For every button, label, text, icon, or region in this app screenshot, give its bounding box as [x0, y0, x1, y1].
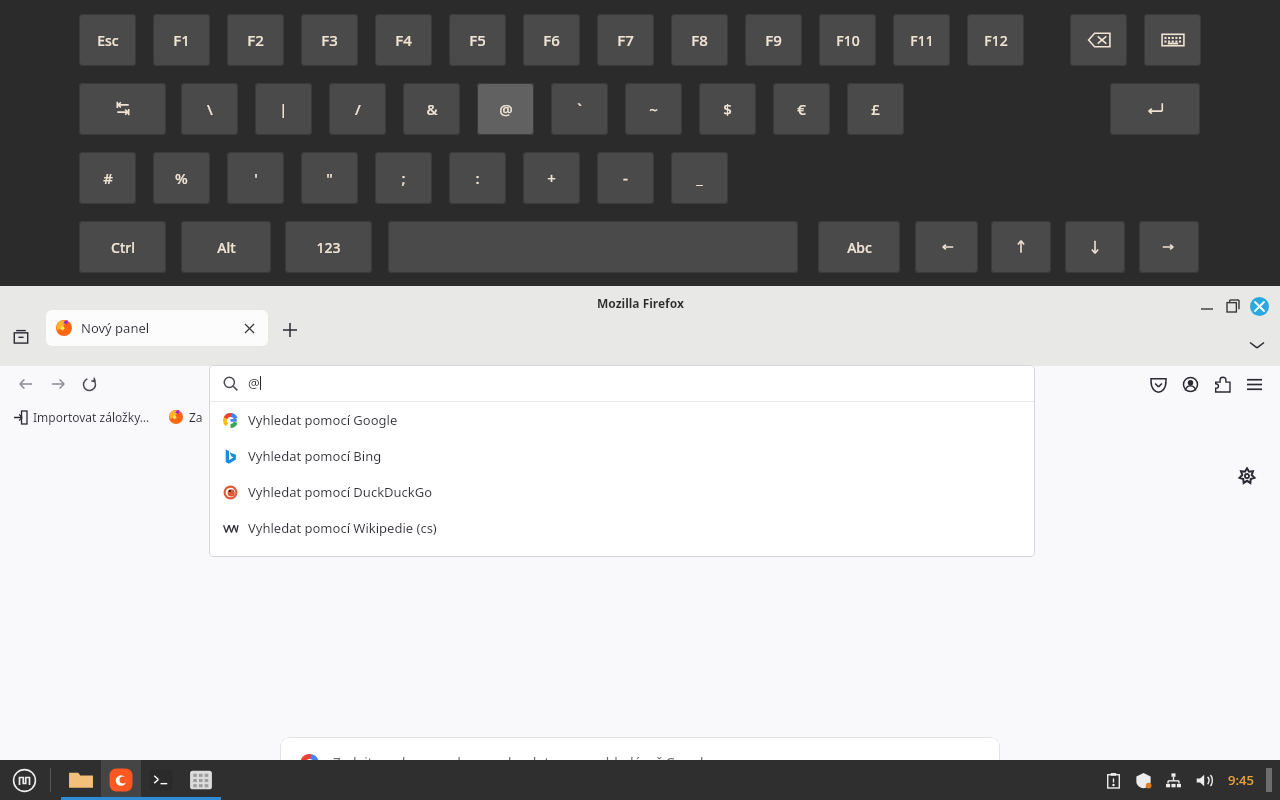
button[interactable]: enter: [1110, 83, 1200, 135]
button[interactable]: Clipboard: [1098, 765, 1128, 795]
button[interactable]: Vyhledat pomocí Wikipedie (cs): [223, 510, 1035, 546]
button[interactable]: _: [671, 152, 728, 204]
staticText: ;: [401, 168, 406, 188]
button[interactable]: F9: [745, 14, 802, 66]
staticText: F1: [173, 30, 190, 50]
button[interactable]: £: [847, 83, 904, 135]
button[interactable]: ": [301, 152, 358, 204]
button[interactable]: Close: [1246, 293, 1272, 319]
button[interactable]: Update manager: [1128, 765, 1158, 795]
button[interactable]: up: [991, 221, 1051, 273]
button[interactable]: Alt: [181, 221, 271, 273]
button[interactable]: Close tab: [240, 319, 258, 337]
button[interactable]: `: [551, 83, 608, 135]
button[interactable]: Vyhledat pomocí DuckDuckGo: [223, 474, 1035, 510]
button[interactable]: F3: [301, 14, 358, 66]
button[interactable]: Forward: [42, 368, 74, 400]
staticText: #: [103, 168, 113, 188]
staticText: Alt: [217, 238, 236, 257]
staticText: F5: [469, 30, 486, 50]
button[interactable]: Vyhledat pomocí Bing: [223, 438, 1035, 474]
button[interactable]: bksp: [1070, 14, 1127, 66]
button[interactable]: Files: [61, 760, 101, 800]
button[interactable]: kbd: [1144, 14, 1201, 66]
button[interactable]: Reload: [74, 369, 104, 399]
button[interactable]: $: [699, 83, 756, 135]
button[interactable]: New tab: [276, 316, 304, 344]
button[interactable]: ': [227, 152, 284, 204]
button[interactable]: Volume: [1188, 765, 1218, 795]
button[interactable]: Maximize: [1220, 293, 1246, 319]
button[interactable]: Abc: [818, 221, 900, 273]
button[interactable]: Expand: [1242, 330, 1272, 360]
button[interactable]: Vyhledat pomocí Google: [223, 402, 1035, 438]
button[interactable]: 9:45: [1222, 771, 1260, 789]
button[interactable]: @: [477, 83, 534, 135]
button[interactable]: Save to Pocket: [1142, 368, 1174, 400]
button[interactable]: &: [403, 83, 460, 135]
staticText: €: [797, 99, 806, 119]
button[interactable]: F12: [967, 14, 1024, 66]
staticText: _: [696, 168, 703, 188]
button[interactable]: F11: [893, 14, 950, 66]
button[interactable]: Importovat záložky…: [8, 406, 156, 428]
button[interactable]: [388, 221, 798, 273]
staticText: Abc: [847, 238, 872, 257]
staticText: |: [279, 99, 288, 119]
button[interactable]: Personalize new tab: [1233, 462, 1261, 490]
button[interactable]: -: [597, 152, 654, 204]
button[interactable]: On-screen keyboard: [181, 760, 221, 800]
button[interactable]: Firefox: [101, 760, 141, 800]
button[interactable]: Ctrl: [79, 221, 166, 273]
staticText: F6: [543, 30, 560, 50]
staticText: +: [547, 168, 556, 188]
button[interactable]: +: [523, 152, 580, 204]
button[interactable]: %: [153, 152, 210, 204]
staticText: %: [175, 168, 188, 188]
button[interactable]: F10: [819, 14, 876, 66]
button[interactable]: €: [773, 83, 830, 135]
button[interactable]: Minimize: [1194, 293, 1220, 319]
button[interactable]: F2: [227, 14, 284, 66]
button[interactable]: F8: [671, 14, 728, 66]
button[interactable]: Network: [1158, 765, 1188, 795]
button[interactable]: F6: [523, 14, 580, 66]
button[interactable]: Open application menu: [1238, 368, 1270, 400]
button[interactable]: Extensions: [1206, 368, 1238, 400]
staticText: \: [207, 99, 213, 119]
button[interactable]: 123: [285, 221, 372, 273]
staticText: F7: [617, 30, 634, 50]
button[interactable]: Zadejte webovou adresu nebo dotaz pro vy…: [300, 737, 1000, 789]
button[interactable]: ;: [375, 152, 432, 204]
button[interactable]: F5: [449, 14, 506, 66]
button[interactable]: F7: [597, 14, 654, 66]
button[interactable]: tab: [79, 83, 166, 135]
button[interactable]: F4: [375, 14, 432, 66]
button[interactable]: :: [449, 152, 506, 204]
staticText: F9: [765, 30, 782, 50]
staticText: ~: [649, 99, 658, 119]
button[interactable]: Esc: [79, 14, 136, 66]
staticText: Vyhledat pomocí DuckDuckGo: [248, 483, 433, 501]
button[interactable]: \: [181, 83, 238, 135]
button[interactable]: Account: [1174, 368, 1206, 400]
button[interactable]: /: [329, 83, 386, 135]
button[interactable]: left: [915, 221, 978, 273]
button[interactable]: |: [255, 83, 312, 135]
staticText: ": [326, 168, 333, 188]
button[interactable]: List all tabs: [6, 322, 36, 352]
button[interactable]: ~: [625, 83, 682, 135]
button[interactable]: right: [1139, 221, 1199, 273]
staticText: F3: [321, 30, 338, 50]
button[interactable]: Back: [10, 368, 42, 400]
staticText: Za: [189, 409, 203, 425]
button[interactable]: Za: [164, 406, 208, 428]
button[interactable]: Terminal: [141, 760, 181, 800]
button[interactable]: F1: [153, 14, 210, 66]
button[interactable]: #: [79, 152, 136, 204]
staticText: Zadejte webovou adresu nebo dotaz pro vy…: [333, 754, 712, 772]
button[interactable]: Nový panel: [56, 310, 258, 346]
button[interactable]: Menu: [6, 762, 42, 798]
button[interactable]: down: [1065, 221, 1125, 273]
